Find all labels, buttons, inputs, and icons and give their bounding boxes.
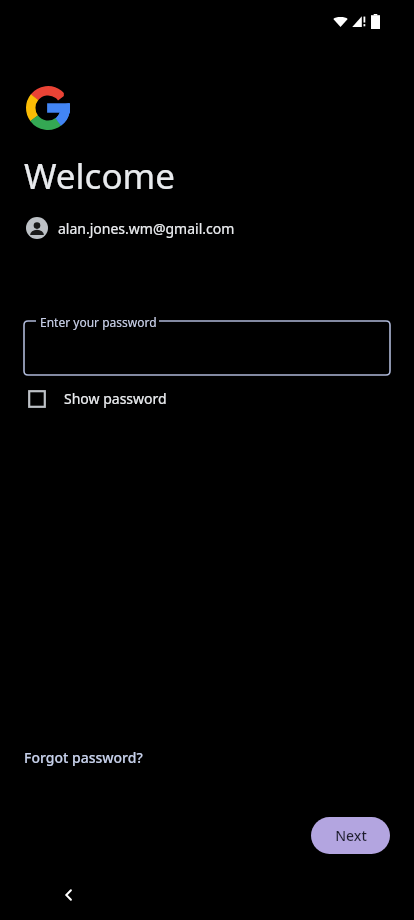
staticText: alan.jones.wm@gmail.com — [58, 219, 235, 238]
staticText: Forgot password? — [24, 748, 143, 767]
button[interactable]: Forgot password? — [16, 742, 151, 773]
button[interactable]: Next — [311, 817, 390, 854]
staticText: Welcome — [24, 152, 176, 200]
staticText: Show password — [64, 389, 167, 408]
staticText: Enter your password — [40, 314, 157, 330]
button[interactable]: Back — [53, 879, 85, 911]
button[interactable]: alan.jones.wm@gmail.com — [24, 215, 237, 241]
button[interactable]: Enter your password — [24, 313, 390, 383]
staticText: Next — [335, 826, 367, 845]
button[interactable]: Show password — [24, 385, 171, 412]
